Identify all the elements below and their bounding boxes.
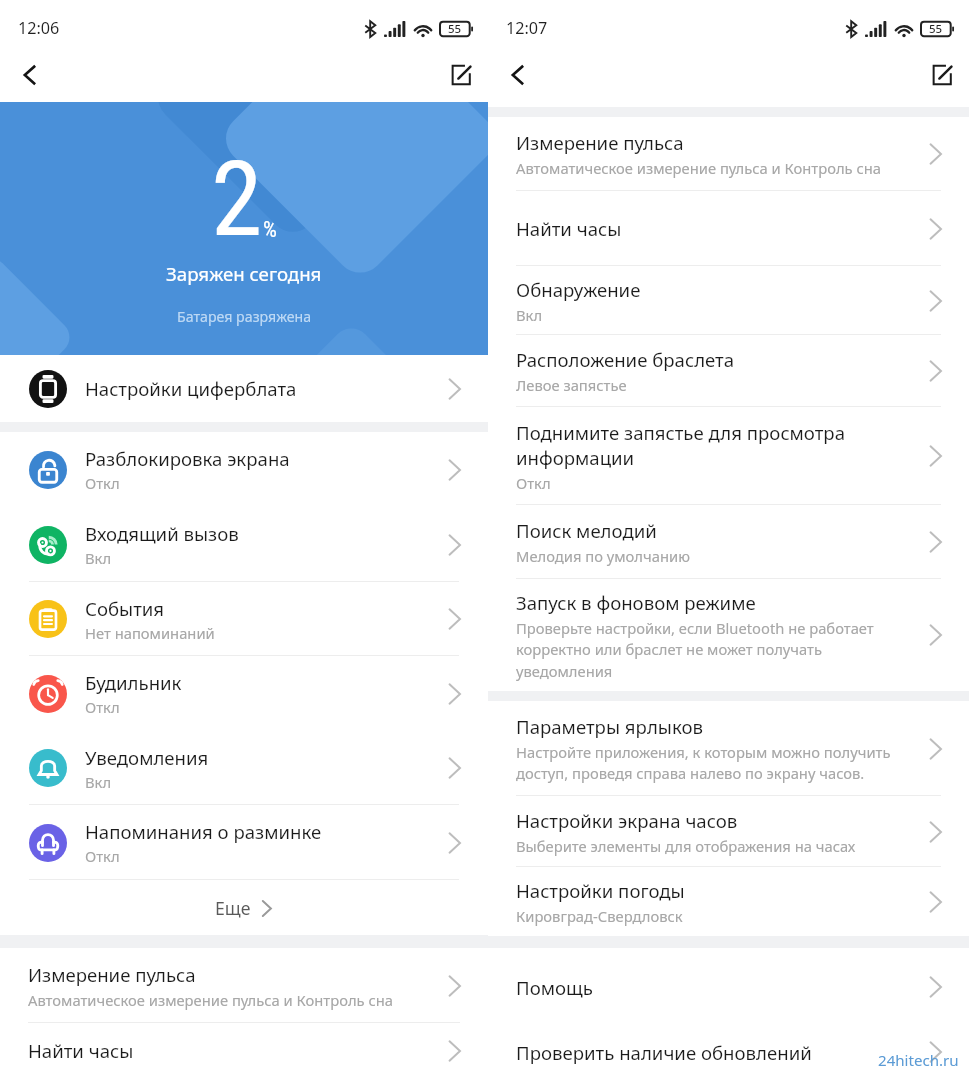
button[interactable]: События bbox=[0, 582, 488, 656]
button[interactable]: Измерение пульса bbox=[488, 117, 969, 191]
staticText: Настройте приложения, к которым можно по… bbox=[516, 742, 901, 783]
staticText: События bbox=[85, 596, 165, 621]
staticText: 2 bbox=[211, 139, 263, 261]
staticText: Уведомления bbox=[85, 745, 209, 770]
button[interactable]: Входящий вызов bbox=[0, 507, 488, 582]
staticText: Откл bbox=[85, 473, 120, 493]
staticText: Вкл bbox=[85, 772, 112, 792]
button[interactable]: Запуск в фоновом режиме bbox=[488, 579, 969, 691]
staticText: Настройки циферблата bbox=[85, 376, 297, 401]
button[interactable]: Проверить наличие обновлений bbox=[488, 1026, 969, 1078]
staticText: Кировград-Свердловск bbox=[516, 906, 683, 926]
staticText: Расположение браслета bbox=[516, 347, 735, 372]
staticText: Поиск мелодий bbox=[516, 518, 657, 543]
staticText: Проверить наличие обновлений bbox=[516, 1040, 812, 1065]
staticText: Вкл bbox=[85, 548, 112, 568]
staticText: Вкл bbox=[516, 305, 543, 325]
button[interactable]: Еще bbox=[0, 880, 488, 935]
staticText: Мелодия по умолчанию bbox=[516, 546, 690, 566]
staticText: 55 bbox=[929, 21, 943, 37]
button[interactable]: Edit bbox=[439, 53, 483, 97]
button[interactable]: Помощь bbox=[488, 948, 969, 1026]
staticText: Найти часы bbox=[516, 216, 622, 241]
button[interactable]: Разблокировка экрана bbox=[0, 432, 488, 507]
staticText: Разблокировка экрана bbox=[85, 446, 290, 471]
staticText: Входящий вызов bbox=[85, 521, 239, 546]
staticText: Нет напоминаний bbox=[85, 623, 215, 643]
staticText: 12:07 bbox=[506, 17, 548, 39]
staticText: Настройки погоды bbox=[516, 878, 685, 903]
button[interactable]: Обнаружение bbox=[488, 266, 969, 335]
button[interactable]: Уведомления bbox=[0, 731, 488, 805]
staticText: Заряжен сегодня bbox=[166, 261, 322, 286]
staticText: Настройки экрана часов bbox=[516, 808, 738, 833]
button[interactable]: Настройки экрана часов bbox=[488, 796, 969, 867]
staticText: Откл bbox=[85, 846, 120, 866]
staticText: Напоминания о разминке bbox=[85, 819, 322, 844]
button[interactable]: Настройки погоды bbox=[488, 867, 969, 936]
staticText: Поднимите запястье для просмотра информа… bbox=[516, 420, 901, 470]
button[interactable]: Измерение пульса bbox=[0, 948, 488, 1023]
button[interactable]: Поднимите запястье для просмотра информа… bbox=[488, 407, 969, 505]
staticText: Запуск в фоновом режиме bbox=[516, 590, 756, 615]
staticText: Будильник bbox=[85, 670, 182, 695]
staticText: Измерение пульса bbox=[28, 962, 196, 987]
staticText: Откл bbox=[85, 697, 120, 717]
staticText: Проверьте настройки, если Bluetooth не р… bbox=[516, 618, 901, 681]
button[interactable]: Back bbox=[8, 53, 52, 97]
staticText: Найти часы bbox=[28, 1038, 134, 1063]
staticText: Помощь bbox=[516, 975, 593, 1000]
button[interactable]: Найти часы bbox=[488, 191, 969, 266]
staticText: Выберите элементы для отображения на час… bbox=[516, 836, 856, 856]
staticText: 24hitech.ru bbox=[878, 1050, 959, 1071]
staticText: Батарея разряжена bbox=[177, 307, 312, 326]
staticText: Измерение пульса bbox=[516, 130, 684, 155]
staticText: Обнаружение bbox=[516, 277, 641, 302]
staticText: Параметры ярлыков bbox=[516, 714, 703, 739]
button[interactable]: Найти часы bbox=[0, 1023, 488, 1078]
staticText: Откл bbox=[516, 473, 551, 493]
staticText: 12:06 bbox=[18, 17, 60, 39]
button[interactable]: Параметры ярлыков bbox=[488, 701, 969, 796]
button[interactable]: Напоминания о разминке bbox=[0, 805, 488, 880]
button[interactable]: Расположение браслета bbox=[488, 335, 969, 407]
staticText: Левое запястье bbox=[516, 375, 627, 395]
staticText: Автоматическое измерение пульса и Контро… bbox=[28, 990, 393, 1010]
button[interactable]: Поиск мелодий bbox=[488, 505, 969, 579]
button[interactable]: Настройки циферблата bbox=[0, 355, 488, 422]
button[interactable]: Будильник bbox=[0, 656, 488, 731]
staticText: Автоматическое измерение пульса и Контро… bbox=[516, 158, 881, 178]
staticText: 55 bbox=[448, 21, 462, 37]
button[interactable]: Back bbox=[496, 53, 540, 97]
staticText: % bbox=[263, 217, 277, 243]
button[interactable]: Edit bbox=[920, 53, 964, 97]
staticText: Еще bbox=[215, 896, 251, 920]
